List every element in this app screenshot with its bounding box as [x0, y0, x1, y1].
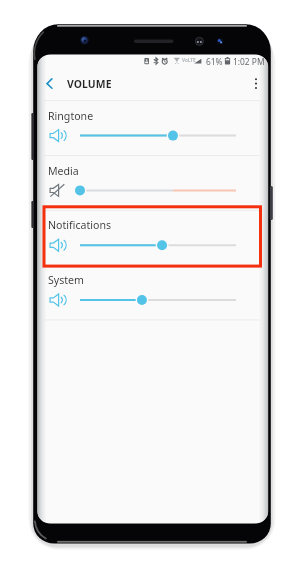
- staticText: Ringtone: [48, 109, 94, 123]
- button[interactable]: More options: [247, 74, 266, 93]
- button[interactable]: Media volume: [40, 155, 267, 210]
- button[interactable]: Back: [42, 74, 60, 93]
- button[interactable]: Notifications volume: [40, 210, 267, 265]
- staticText: System: [48, 273, 84, 287]
- button[interactable]: System volume: [40, 265, 267, 320]
- staticText: Notifications: [48, 218, 112, 232]
- staticText: 61%: [206, 56, 223, 67]
- staticText: VoLTE: [182, 57, 196, 63]
- button[interactable]: Ringtone volume: [40, 100, 267, 155]
- staticText: VOLUME: [67, 77, 112, 91]
- staticText: 1:02 PM: [233, 56, 265, 67]
- staticText: Media: [48, 164, 79, 178]
